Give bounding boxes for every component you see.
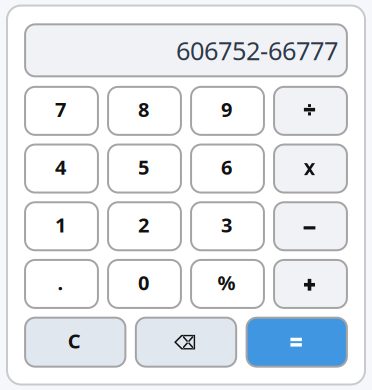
staticText: 7 — [55, 96, 66, 123]
button[interactable]: Multiply — [274, 145, 347, 193]
button[interactable]: 3 — [191, 202, 264, 250]
button[interactable]: 7 — [25, 87, 98, 135]
staticText: 606752-66777 — [176, 33, 338, 67]
button[interactable]: 6 — [191, 145, 264, 193]
button[interactable]: Subtract — [274, 202, 347, 250]
staticText: 6 — [221, 154, 232, 180]
button[interactable]: 8 — [108, 87, 181, 135]
staticText: . — [57, 269, 63, 296]
button[interactable]: 9 — [191, 87, 264, 135]
staticText: C — [68, 327, 81, 354]
button[interactable]: . — [25, 260, 98, 308]
button[interactable]: 2 — [108, 202, 181, 250]
button[interactable]: % — [191, 260, 264, 308]
button[interactable]: Equals — [247, 318, 347, 367]
staticText: % — [217, 269, 235, 296]
staticText: 2 — [138, 211, 149, 238]
button[interactable]: 4 — [25, 145, 98, 193]
staticText: 5 — [138, 154, 149, 180]
button[interactable]: Backspace — [136, 318, 236, 367]
staticText: 3 — [221, 211, 232, 238]
staticText: 0 — [138, 269, 149, 296]
button[interactable]: Divide — [274, 87, 347, 135]
button[interactable]: Add — [274, 260, 347, 308]
button[interactable]: C — [25, 318, 125, 367]
staticText: 4 — [55, 154, 66, 180]
button[interactable]: 5 — [108, 145, 181, 193]
button[interactable]: 0 — [108, 260, 181, 308]
staticText: 9 — [221, 96, 232, 123]
staticText: 1 — [55, 211, 66, 238]
button[interactable]: 1 — [25, 202, 98, 250]
staticText: 8 — [138, 96, 149, 123]
